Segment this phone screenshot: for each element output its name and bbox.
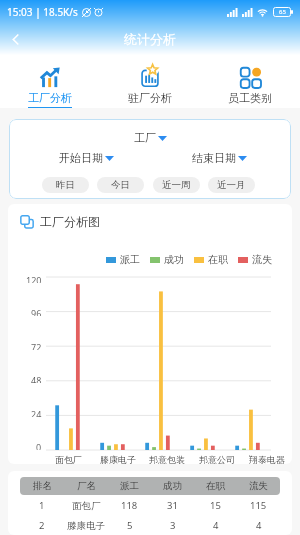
staticText: 4: [256, 519, 262, 532]
staticText: 65: [279, 8, 286, 16]
staticText: 面包厂: [55, 454, 82, 464]
staticText: 工厂: [134, 131, 156, 145]
staticText: 面包厂: [72, 500, 101, 512]
staticText: 员工类别: [228, 91, 272, 105]
staticText: 近一月: [217, 179, 246, 191]
staticText: 2: [39, 519, 45, 532]
staticText: 派工: [120, 480, 139, 492]
staticText: 开始日期: [59, 151, 103, 165]
staticText: 驻厂分析: [128, 91, 172, 105]
staticText: 工厂分析: [28, 91, 72, 105]
button[interactable]: 1: [20, 495, 280, 516]
staticText: 滕康电子: [100, 454, 136, 464]
staticText: 邦意包装: [149, 454, 185, 464]
staticText: 结束日期: [192, 151, 236, 165]
staticText: 1: [39, 499, 45, 512]
staticText: 翔泰电器: [249, 454, 285, 464]
staticText: 0: [36, 441, 42, 450]
staticText: 118: [121, 499, 138, 512]
staticText: 120: [26, 274, 42, 283]
staticText: 15:03 | 18.5K/s: [7, 5, 78, 19]
button[interactable]: 昨日: [42, 177, 89, 193]
staticText: 昨日: [56, 179, 75, 191]
staticText: 115: [250, 499, 267, 512]
staticText: 15: [210, 499, 221, 512]
button[interactable]: Back: [0, 24, 30, 54]
button[interactable]: 今日: [97, 177, 144, 193]
button[interactable]: 驻厂分析: [100, 58, 200, 108]
staticText: 近一周: [162, 179, 191, 191]
staticText: 今日: [111, 179, 130, 191]
staticText: 在职: [208, 253, 228, 266]
staticText: 滕康电子: [67, 520, 105, 532]
staticText: 48: [31, 374, 42, 383]
staticText: 31: [167, 499, 178, 512]
staticText: 流失: [249, 480, 268, 492]
staticText: 工厂分析图: [40, 214, 100, 229]
staticText: 厂名: [77, 480, 96, 492]
button[interactable]: 结束日期: [192, 151, 247, 165]
button[interactable]: 开始日期: [59, 151, 114, 165]
staticText: 3: [170, 519, 176, 532]
button[interactable]: 工厂分析: [0, 58, 100, 108]
button[interactable]: 员工类别: [200, 58, 300, 108]
staticText: 排名: [33, 480, 52, 492]
staticText: 派工: [120, 253, 140, 266]
staticText: 流失: [252, 253, 272, 266]
staticText: 24: [31, 408, 42, 417]
staticText: 成功: [164, 253, 184, 266]
staticText: 邦意公司: [199, 454, 235, 464]
staticText: 4: [213, 519, 219, 532]
staticText: 72: [31, 341, 42, 350]
button[interactable]: 近一月: [208, 177, 255, 193]
staticText: 5: [127, 519, 133, 532]
button[interactable]: 近一周: [153, 177, 200, 193]
staticText: 在职: [206, 480, 225, 492]
button[interactable]: 工厂: [134, 131, 167, 145]
staticText: 成功: [163, 480, 182, 492]
staticText: 统计分析: [124, 31, 176, 47]
staticText: 96: [31, 307, 42, 316]
button[interactable]: 2: [20, 516, 280, 535]
